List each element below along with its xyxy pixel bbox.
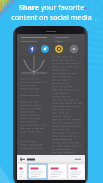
button[interactable] [68, 164, 85, 179]
staticText: Share your favorite [0, 2, 103, 12]
staticText: content on social media [0, 12, 103, 22]
button[interactable] [48, 164, 67, 179]
button[interactable]: More options [70, 45, 78, 53]
button[interactable] [28, 164, 47, 179]
button[interactable] [17, 164, 27, 179]
button[interactable]: Share on Twitter [41, 45, 49, 53]
button[interactable]: Share on Facebook [28, 45, 36, 53]
button[interactable]: Share to app [55, 45, 63, 53]
